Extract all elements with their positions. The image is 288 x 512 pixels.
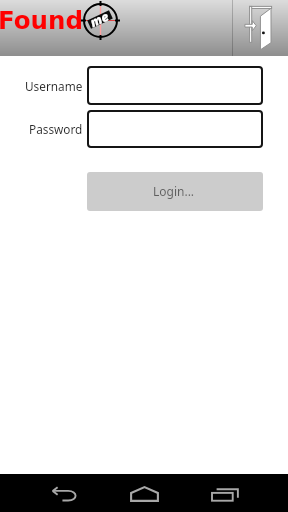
staticText: Login... [153, 183, 195, 199]
button[interactable] [87, 110, 263, 148]
staticText: me [87, 8, 112, 31]
staticText: Found [0, 6, 83, 35]
button[interactable]: Login... [87, 172, 263, 211]
button[interactable]: Home [104, 474, 184, 512]
button[interactable]: Log out [234, 0, 288, 56]
button[interactable]: Recent apps [185, 474, 265, 512]
staticText: Password [29, 121, 83, 137]
staticText: Username [25, 78, 83, 94]
button[interactable]: Back [24, 474, 104, 512]
button[interactable] [87, 66, 263, 105]
